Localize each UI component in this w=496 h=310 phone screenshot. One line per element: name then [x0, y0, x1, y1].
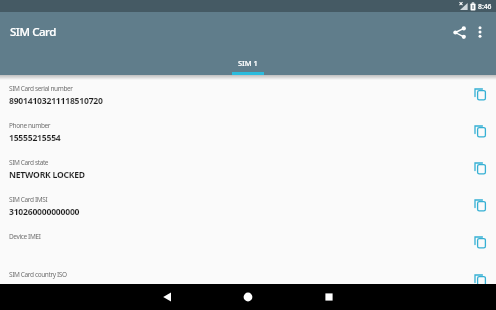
- button[interactable]: [468, 20, 492, 44]
- staticText: Phone number: [9, 121, 51, 130]
- staticText: SIM Card serial number: [9, 84, 73, 93]
- button[interactable]: [471, 271, 489, 284]
- button[interactable]: [311, 284, 347, 310]
- button[interactable]: [471, 159, 489, 177]
- button[interactable]: [450, 23, 468, 41]
- button[interactable]: SIM Card serial number: [0, 75, 496, 112]
- button[interactable]: [149, 284, 185, 310]
- button[interactable]: [230, 284, 266, 310]
- staticText: 8:46: [478, 2, 492, 11]
- staticText: Device IMEI: [9, 232, 41, 241]
- staticText: SIM Card: [10, 24, 56, 40]
- button[interactable]: Device IMEI: [0, 223, 496, 260]
- button[interactable]: [471, 122, 489, 140]
- button[interactable]: Phone number: [0, 112, 496, 149]
- button[interactable]: SIM Card country ISO: [0, 261, 496, 284]
- button[interactable]: [471, 196, 489, 214]
- staticText: SIM 1: [238, 58, 258, 68]
- staticText: 310260000000000: [9, 206, 80, 218]
- staticText: SIM Card state: [9, 158, 49, 167]
- button[interactable]: SIM 1: [203, 52, 293, 75]
- button[interactable]: [471, 85, 489, 103]
- button[interactable]: SIM Card IMSI: [0, 186, 496, 223]
- staticText: 15555215554: [9, 132, 61, 144]
- staticText: NETWORK LOCKED: [9, 169, 85, 181]
- button[interactable]: SIM Card state: [0, 149, 496, 186]
- staticText: 89014103211118510720: [9, 95, 103, 107]
- staticText: SIM Card IMSI: [9, 195, 48, 204]
- staticText: SIM Card country ISO: [9, 270, 67, 279]
- button[interactable]: [471, 233, 489, 251]
